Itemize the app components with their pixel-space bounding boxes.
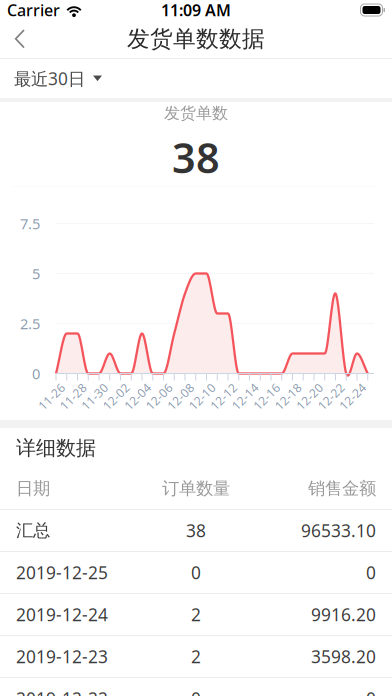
staticText: 2019-12-22: [16, 687, 108, 696]
staticText: 5: [32, 264, 40, 283]
staticText: 11-26: [35, 388, 67, 404]
staticText: 12-14: [229, 388, 261, 404]
staticText: 0: [32, 364, 40, 383]
staticText: 96533.10: [301, 519, 376, 542]
staticText: 2019-12-24: [16, 603, 108, 626]
staticText: 详细数据: [16, 436, 96, 460]
staticText: 12-16: [250, 388, 282, 404]
staticText: 发货单数数据: [127, 25, 265, 53]
staticText: 0: [191, 687, 201, 696]
staticText: 最近30日: [14, 67, 85, 90]
button[interactable]: Back: [0, 20, 40, 58]
staticText: 2: [191, 645, 201, 668]
staticText: 12-22: [315, 388, 347, 404]
staticText: 2019-12-25: [16, 561, 108, 584]
staticText: 12-04: [121, 388, 153, 404]
staticText: 订单数量: [162, 478, 230, 499]
staticText: 7.5: [20, 214, 40, 233]
staticText: 12-06: [143, 388, 175, 404]
staticText: 12-02: [100, 388, 132, 404]
staticText: 销售金额: [308, 478, 376, 499]
staticText: 38: [172, 130, 220, 185]
staticText: 12-12: [207, 388, 239, 404]
staticText: 0: [191, 561, 201, 584]
staticText: 11-28: [57, 388, 89, 404]
staticText: 38: [186, 519, 206, 542]
staticText: 12-24: [336, 388, 368, 404]
staticText: 0: [366, 561, 376, 584]
staticText: 12-10: [186, 388, 218, 404]
staticText: 11:09 AM: [161, 0, 231, 21]
staticText: 0: [366, 687, 376, 696]
staticText: 发货单数: [164, 103, 228, 123]
button[interactable]: 最近30日: [0, 59, 116, 98]
staticText: Carrier: [7, 0, 60, 21]
staticText: 3598.20: [311, 645, 376, 668]
staticText: 2019-12-23: [16, 645, 108, 668]
staticText: 9916.20: [311, 603, 376, 626]
staticText: 2.5: [20, 314, 40, 333]
staticText: 12-20: [293, 388, 325, 404]
staticText: 2: [191, 603, 201, 626]
staticText: 汇总: [16, 520, 50, 541]
staticText: 日期: [16, 478, 50, 499]
staticText: 12-18: [272, 388, 304, 404]
staticText: 12-08: [164, 388, 196, 404]
staticText: 11-30: [78, 388, 110, 404]
